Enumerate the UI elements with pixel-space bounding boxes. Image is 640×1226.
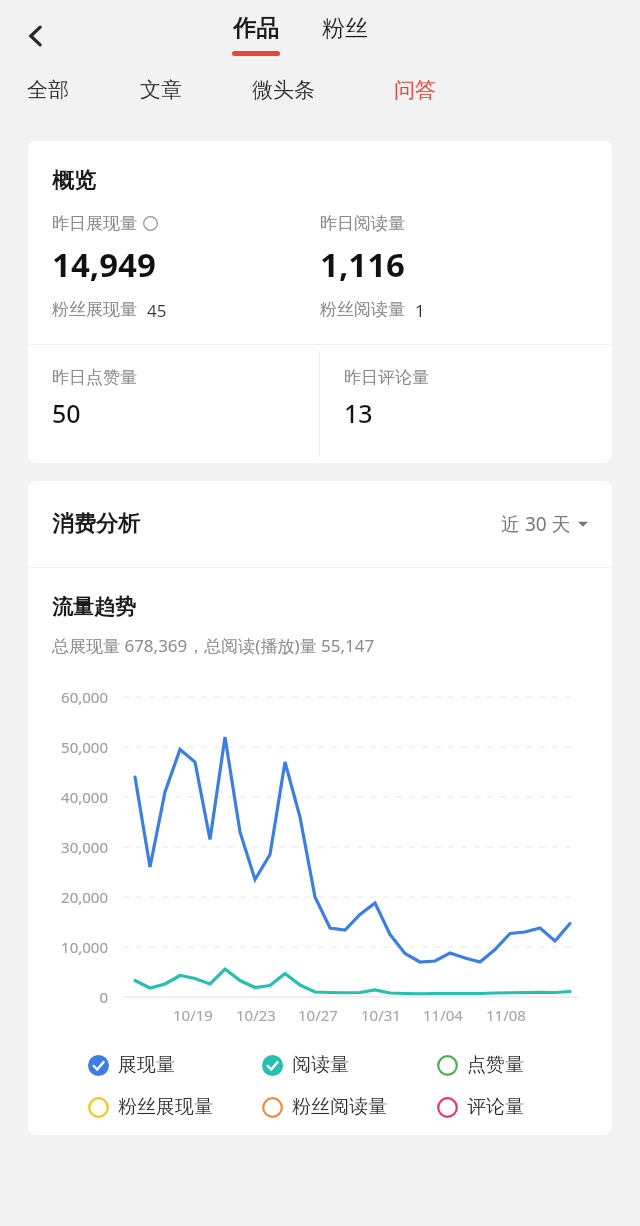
button[interactable]: 粉丝 [322, 14, 368, 43]
staticText: 30,000 [61, 837, 108, 857]
staticText: 昨日展现量 [52, 213, 137, 234]
staticText: 10/27 [298, 1005, 338, 1025]
button[interactable]: 评论量 [437, 1095, 612, 1119]
staticText: 40,000 [61, 787, 108, 807]
staticText: 文章 [140, 77, 182, 103]
staticText: 评论量 [467, 1095, 524, 1119]
staticText: 10/31 [361, 1005, 401, 1025]
button[interactable]: 展现量 [88, 1053, 262, 1077]
staticText: 10,000 [61, 937, 108, 957]
button[interactable]: 粉丝展现量 [88, 1095, 262, 1119]
staticText: 昨日阅读量 [320, 213, 405, 234]
staticText: 粉丝展现量 [118, 1095, 213, 1119]
staticText: 45 [147, 299, 167, 322]
staticText: 1,116 [320, 242, 405, 287]
staticText: 点赞量 [467, 1053, 524, 1077]
staticText: 1 [415, 299, 425, 322]
staticText: 全部 [27, 77, 69, 103]
staticText: 粉丝展现量 [52, 299, 137, 320]
staticText: 11/04 [423, 1005, 463, 1025]
staticText: 10/19 [173, 1005, 213, 1025]
staticText: 0 [99, 987, 108, 1007]
staticText: 展现量 [118, 1053, 175, 1077]
staticText: 50 [52, 396, 81, 430]
button[interactable]: 粉丝阅读量 [262, 1095, 437, 1119]
staticText: 近 30 天 [501, 511, 571, 537]
button[interactable]: 近 30 天 [501, 511, 588, 537]
staticText: 问答 [394, 77, 436, 103]
staticText: 消费分析 [52, 510, 140, 538]
button[interactable]: 微头条 [252, 77, 315, 103]
staticText: 粉丝 [322, 14, 368, 43]
button[interactable]: 问答 [394, 77, 436, 103]
staticText: 50,000 [61, 737, 108, 757]
staticText: 概览 [52, 167, 96, 195]
staticText: 粉丝阅读量 [292, 1095, 387, 1119]
staticText: 流量趋势 [52, 594, 136, 620]
staticText: 20,000 [61, 887, 108, 907]
staticText: 11/08 [486, 1005, 526, 1025]
staticText: 10/23 [236, 1005, 276, 1025]
button[interactable]: 文章 [140, 77, 182, 103]
staticText: 昨日评论量 [344, 367, 429, 388]
button[interactable]: 作品 [232, 14, 280, 56]
staticText: 昨日点赞量 [52, 367, 137, 388]
staticText: 14,949 [52, 242, 156, 287]
button[interactable]: 阅读量 [262, 1053, 437, 1077]
staticText: 总展现量 678,369，总阅读(播放)量 55,147 [52, 634, 375, 657]
staticText: 作品 [233, 14, 279, 43]
staticText: 13 [344, 396, 373, 430]
button[interactable]: 点赞量 [437, 1053, 612, 1077]
staticText: 阅读量 [292, 1053, 349, 1077]
button[interactable]: 全部 [27, 77, 69, 103]
staticText: 微头条 [252, 77, 315, 103]
staticText: 60,000 [61, 687, 108, 707]
staticText: 粉丝阅读量 [320, 299, 405, 320]
button[interactable]: Back [14, 14, 58, 58]
